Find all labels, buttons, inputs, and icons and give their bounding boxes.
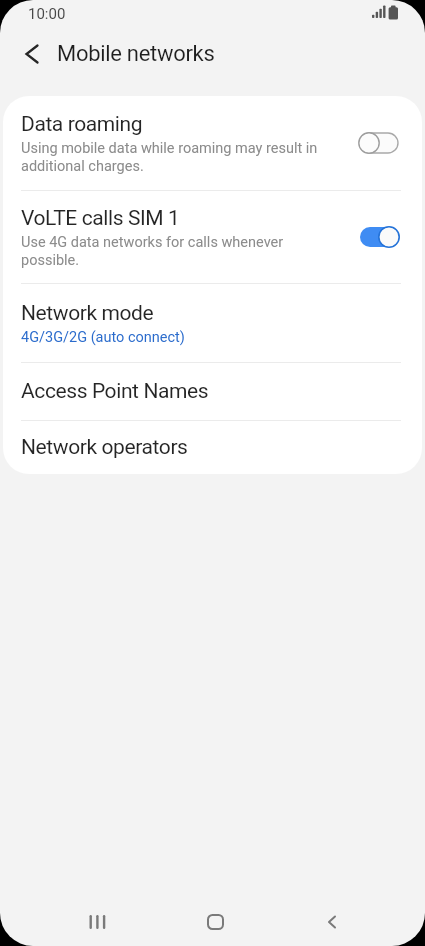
staticText: 4G/3G/2G (auto connect) <box>21 329 185 346</box>
button[interactable] <box>155 898 271 946</box>
button[interactable]: Network operators <box>3 421 422 474</box>
button[interactable] <box>14 38 54 70</box>
button[interactable] <box>271 898 387 946</box>
staticText: Using mobile data while roaming may resu… <box>21 140 318 175</box>
button[interactable] <box>39 898 155 946</box>
staticText: Use 4G data networks for calls whenever … <box>21 234 284 269</box>
staticText: VoLTE calls SIM 1 <box>21 206 180 231</box>
staticText: Data roaming <box>21 112 143 137</box>
button[interactable]: Network mode <box>3 284 422 362</box>
staticText: Network mode <box>21 301 154 326</box>
staticText: Access Point Names <box>21 379 209 404</box>
staticText: 10:00 <box>28 5 66 23</box>
button[interactable]: Access Point Names <box>3 363 422 420</box>
button[interactable]: VoLTE calls SIM 1 <box>3 191 422 283</box>
staticText: Mobile networks <box>57 41 215 67</box>
staticText: Network operators <box>21 435 188 460</box>
button[interactable]: Data roaming <box>3 96 422 190</box>
